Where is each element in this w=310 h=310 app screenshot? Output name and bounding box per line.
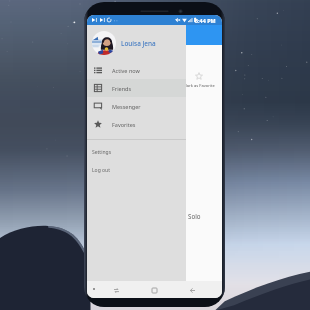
staticText: Log out	[92, 167, 110, 174]
staticText: Louisa Jena	[121, 39, 156, 48]
staticText: 5:44 PM	[195, 17, 216, 24]
button[interactable]: Favorites	[87, 115, 186, 133]
button[interactable]: Log out	[87, 161, 186, 179]
button[interactable]: Mark as Favorite	[195, 72, 203, 80]
staticText: Active now	[112, 67, 140, 74]
button[interactable]: Messenger	[87, 97, 186, 115]
staticText: Solo	[188, 212, 201, 220]
button[interactable]: Back	[186, 284, 198, 296]
staticText: Friends	[112, 85, 132, 92]
staticText: Settings	[92, 149, 112, 156]
staticText: Favorites	[112, 121, 136, 128]
button[interactable]: Friends	[87, 79, 186, 97]
button[interactable]: Recent apps	[110, 284, 122, 296]
staticText: Messenger	[112, 103, 141, 110]
button[interactable]: Settings	[87, 143, 186, 161]
button[interactable]: Active now	[87, 61, 186, 79]
button[interactable]: Hide keyboard	[89, 284, 99, 294]
button[interactable]: Mark as Favorite	[175, 72, 222, 89]
button[interactable]: Home	[148, 284, 160, 296]
button[interactable]: Louisa Jena	[87, 25, 186, 61]
staticText: Mark as Favorite	[183, 83, 215, 89]
